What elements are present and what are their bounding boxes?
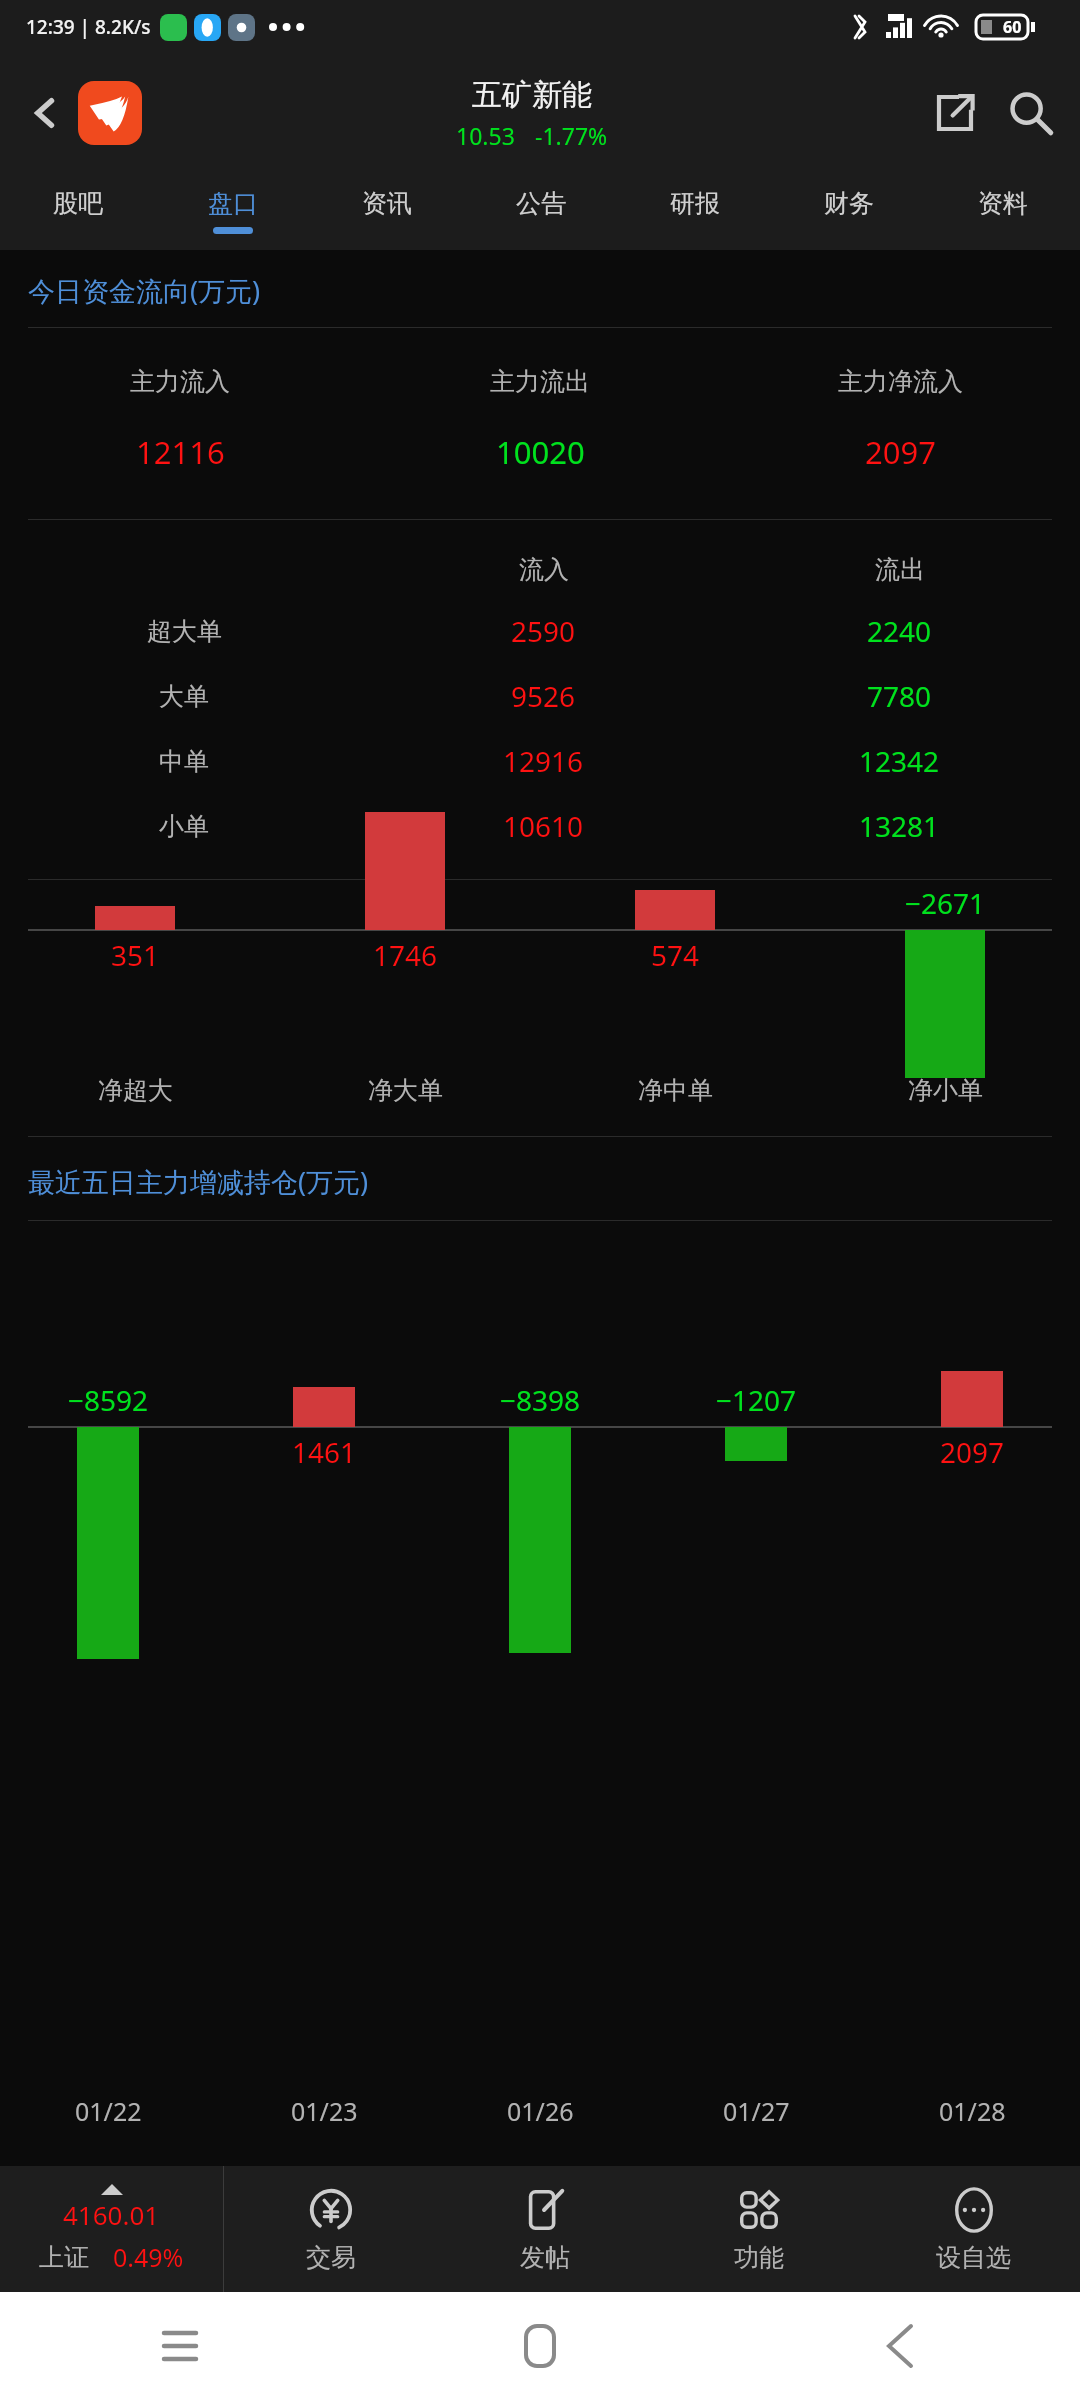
button[interactable]: 股吧 [0,172,155,250]
staticText: 10610 [503,807,584,845]
button[interactable]: 公告 [464,172,618,250]
button[interactable]: 2097 [864,1221,1080,2166]
staticText: 净超大 [98,1075,173,1106]
button[interactable]: 设自选 [866,2166,1080,2292]
button[interactable]: 资讯 [310,172,464,250]
staticText: 资料 [978,188,1028,219]
staticText: 12116 [136,431,225,473]
staticText: 351 [111,936,160,974]
button[interactable]: 交易 [224,2166,438,2292]
staticText: 10020 [496,431,585,473]
staticText: 研报 [670,188,720,219]
staticText: 大单 [159,681,209,712]
staticText: −8398 [500,1381,581,1419]
staticText: 功能 [734,2242,784,2273]
staticText: 中单 [159,746,209,777]
staticText: 五矿新能 [472,76,592,114]
staticText: 净中单 [638,1075,713,1106]
staticText: 9526 [511,677,576,715]
staticText: 股吧 [53,188,103,219]
staticText: 2590 [511,612,576,650]
button[interactable]: 功能 [652,2166,866,2292]
button[interactable]: 研报 [618,172,772,250]
staticText: 交易 [306,2242,356,2273]
button[interactable]: 中单 [0,742,1080,780]
staticText: 1746 [373,936,438,974]
button[interactable]: −1207 [648,1221,864,2166]
staticText: 60 [1003,16,1022,38]
button[interactable]: Search [998,80,1064,146]
button[interactable]: 4160.01 [0,2166,223,2292]
staticText: 12:39 | 8.2K/s [26,14,151,40]
staticText: 12916 [503,742,584,780]
button[interactable]: −8398 [432,1221,648,2166]
button[interactable]: 351 [0,880,270,1136]
button[interactable]: 1746 [270,880,540,1136]
staticText: 流出 [875,554,925,585]
staticText: 设自选 [936,2242,1011,2273]
staticText: 最近五日主力增减持仓(万元) [28,1163,369,1200]
button[interactable]: 超大单 [0,612,1080,650]
staticText: 主力净流入 [838,366,963,397]
staticText: 今日资金流向(万元) [28,272,261,309]
staticText: 盘口 [208,188,258,219]
staticText: 小单 [159,811,209,842]
button[interactable]: Back [720,2292,1080,2400]
staticText: 7780 [867,677,932,715]
staticText: 主力流入 [130,366,230,397]
button[interactable]: 1461 [216,1221,432,2166]
staticText: 主力流出 [490,366,590,397]
staticText: 01/27 [723,2094,790,2128]
button[interactable]: Share [922,80,988,146]
staticText: 上证 [39,2242,89,2273]
button[interactable]: Recent apps [0,2292,360,2400]
staticText: 0.49% [113,2240,184,2274]
staticText: 资讯 [362,188,412,219]
staticText: 01/28 [939,2094,1006,2128]
staticText: 公告 [516,188,566,219]
staticText: 2097 [940,1433,1005,1471]
staticText: 12342 [859,742,940,780]
staticText: −2671 [905,884,986,922]
staticText: 13281 [859,807,940,845]
button[interactable]: 发帖 [438,2166,652,2292]
button[interactable]: 大单 [0,677,1080,715]
staticText: 2097 [865,431,936,473]
button[interactable]: −8592 [0,1221,216,2166]
staticText: 流入 [519,554,569,585]
staticText: -1.77% [535,120,608,151]
button[interactable]: App icon [78,81,142,145]
staticText: 超大单 [147,616,222,647]
staticText: −8592 [68,1381,149,1419]
staticText: 1461 [292,1433,357,1471]
staticText: 01/23 [291,2094,358,2128]
staticText: 01/26 [507,2094,574,2128]
staticText: 净小单 [908,1075,983,1106]
button[interactable]: 574 [540,880,810,1136]
button[interactable]: −2671 [810,880,1080,1136]
staticText: 2240 [867,612,932,650]
staticText: 净大单 [368,1075,443,1106]
button[interactable]: 财务 [772,172,926,250]
staticText: 发帖 [520,2242,570,2273]
staticText: 574 [651,936,700,974]
button[interactable]: 小单 [0,807,1080,845]
button[interactable]: 资料 [926,172,1080,250]
staticText: 4160.01 [63,2197,160,2232]
button[interactable]: Home [360,2292,720,2400]
staticText: −1207 [716,1381,797,1419]
staticText: 01/22 [75,2094,142,2128]
staticText: 财务 [824,188,874,219]
button[interactable]: Back [16,84,74,142]
staticText: 10.53 [456,120,515,151]
button[interactable]: 盘口 [155,172,310,250]
